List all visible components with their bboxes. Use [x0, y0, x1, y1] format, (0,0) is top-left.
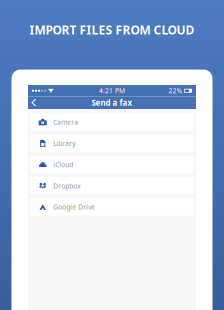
staticText: iCloud: [53, 160, 73, 169]
button[interactable]: Dropbox: [30, 177, 194, 194]
button[interactable]: Google Drive: [30, 198, 194, 216]
button[interactable]: Back: [28, 97, 40, 109]
button[interactable]: Camera: [30, 114, 194, 131]
staticText: Library: [53, 139, 75, 148]
button[interactable]: Library: [30, 135, 194, 152]
staticText: Send a fax: [91, 97, 132, 108]
staticText: 4:21 PM: [99, 86, 125, 95]
staticText: Google Drive: [53, 203, 95, 211]
staticText: Dropbox: [53, 181, 81, 190]
staticText: 22%: [168, 86, 182, 95]
button[interactable]: iCloud: [30, 156, 194, 173]
staticText: IMPORT FILES FROM CLOUD: [29, 22, 194, 38]
staticText: Camera: [53, 118, 78, 127]
